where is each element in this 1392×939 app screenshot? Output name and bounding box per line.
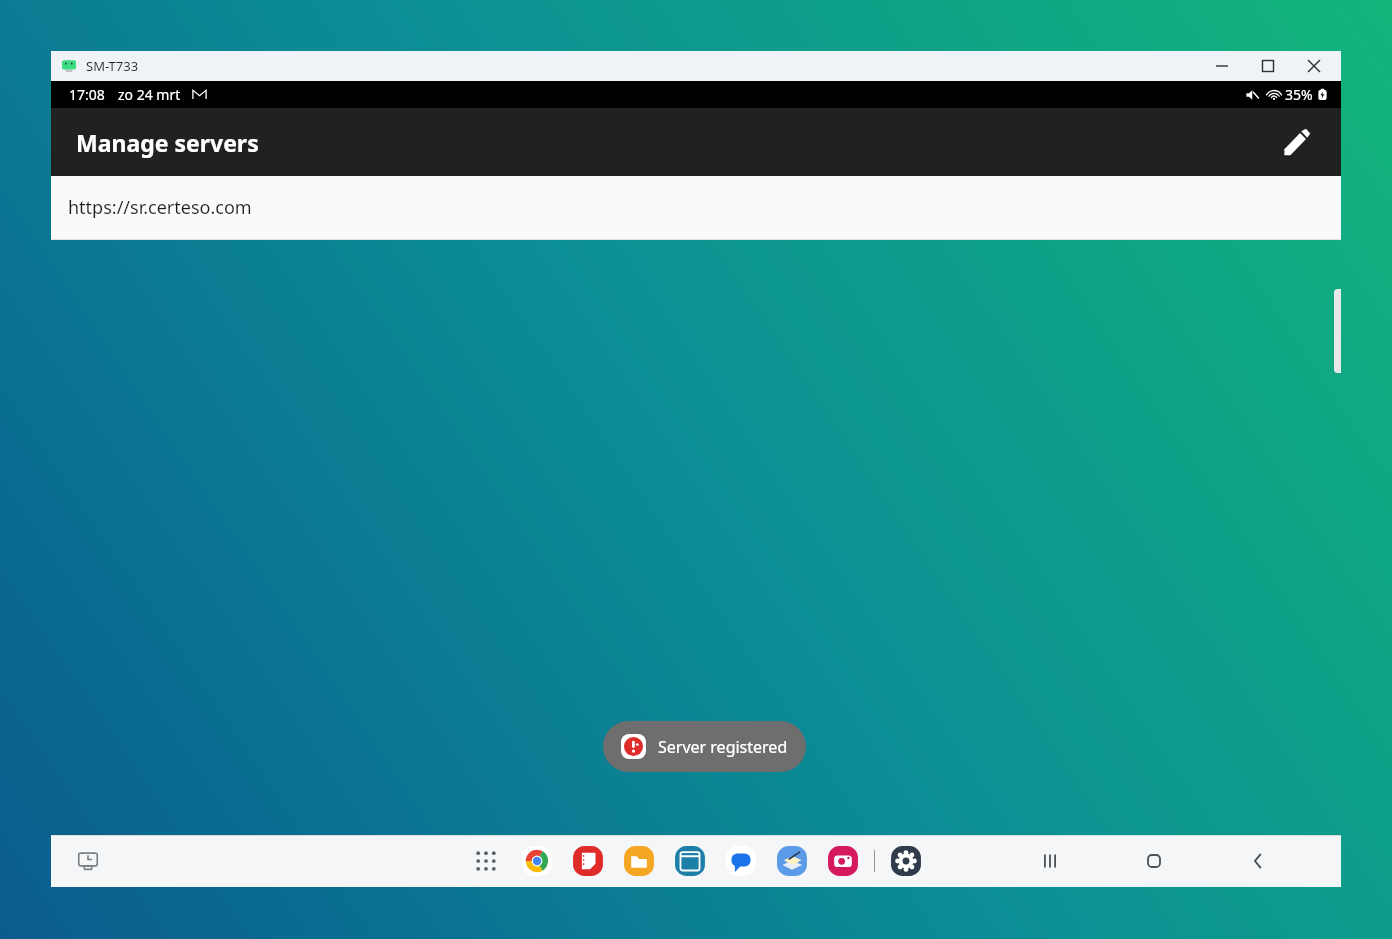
- button[interactable]: Apps: [466, 841, 506, 881]
- button[interactable]: Minimize: [1199, 51, 1245, 81]
- staticText: SM-T733: [86, 57, 139, 75]
- button[interactable]: My Files: [619, 841, 659, 881]
- button[interactable]: Edit: [1271, 116, 1323, 168]
- button[interactable]: Maximize: [1245, 51, 1291, 81]
- staticText: Server registered: [658, 736, 788, 758]
- button[interactable]: Chrome: [517, 841, 557, 881]
- staticText: https://sr.certeso.com: [68, 195, 252, 220]
- button[interactable]: Calendar: [670, 841, 710, 881]
- button[interactable]: Settings: [886, 841, 926, 881]
- button[interactable]: Gallery: [772, 841, 812, 881]
- staticText: 35%: [1285, 85, 1313, 104]
- button[interactable]: Screen timeout: [69, 842, 107, 880]
- button[interactable]: Camera: [823, 841, 863, 881]
- button[interactable]: Samsung Notes: [568, 841, 608, 881]
- button[interactable]: Close: [1291, 51, 1337, 81]
- button[interactable]: Back: [1235, 838, 1281, 884]
- staticText: zo 24 mrt: [118, 85, 181, 104]
- button[interactable]: Recents: [1027, 838, 1073, 884]
- button[interactable]: Home: [1131, 838, 1177, 884]
- button[interactable]: Messages: [721, 841, 761, 881]
- staticText: 17:08: [69, 85, 105, 104]
- button[interactable]: https://sr.certeso.com: [51, 176, 1341, 239]
- staticText: Manage servers: [76, 127, 259, 158]
